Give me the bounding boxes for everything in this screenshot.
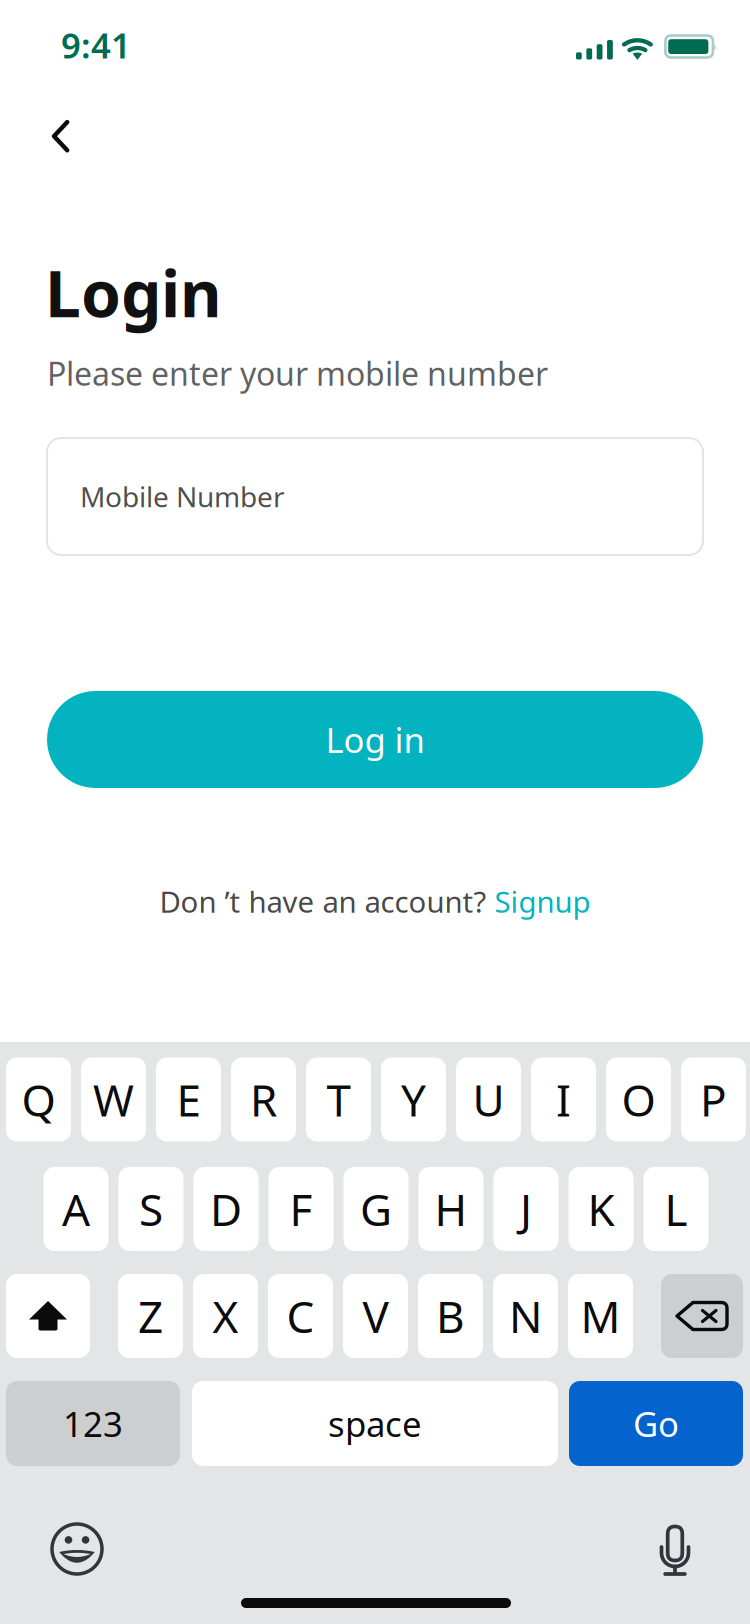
staticText: N (509, 1287, 542, 1345)
staticText: space (328, 1400, 422, 1446)
button[interactable]: W (81, 1057, 146, 1141)
staticText: D (210, 1180, 242, 1238)
staticText: B (436, 1287, 465, 1345)
staticText: C (286, 1287, 314, 1345)
button[interactable]: J (493, 1167, 558, 1251)
staticText: 123 (63, 1400, 123, 1446)
staticText: Don ’t have an account? (159, 882, 494, 921)
staticText: S (139, 1180, 163, 1238)
staticText: R (250, 1070, 277, 1129)
staticText: W (93, 1070, 134, 1129)
button[interactable]: Z (118, 1274, 183, 1358)
button[interactable]: P (681, 1057, 746, 1141)
staticText: U (472, 1070, 504, 1129)
staticText: Login (45, 250, 222, 335)
staticText: M (580, 1287, 620, 1345)
button[interactable]: 123 (6, 1381, 180, 1466)
staticText: I (556, 1070, 571, 1129)
staticText: O (621, 1070, 655, 1129)
staticText: F (289, 1180, 312, 1238)
staticText: Mobile Number (80, 478, 285, 515)
button[interactable]: I (531, 1057, 596, 1141)
button[interactable]: D (193, 1167, 258, 1251)
staticText: T (326, 1070, 350, 1129)
button[interactable]: G (343, 1167, 408, 1251)
button[interactable]: T (306, 1057, 371, 1141)
staticText: E (176, 1070, 200, 1129)
button[interactable]: F (268, 1167, 333, 1251)
button[interactable]: space (192, 1381, 558, 1466)
button[interactable]: Dictation (632, 1506, 718, 1592)
button[interactable]: B (418, 1274, 483, 1358)
button[interactable]: K (568, 1167, 633, 1251)
button[interactable]: Emoji keyboard (34, 1506, 120, 1592)
staticText: Y (401, 1070, 426, 1129)
button[interactable]: O (606, 1057, 671, 1141)
button[interactable]: L (643, 1167, 708, 1251)
button[interactable]: Signup (494, 882, 590, 921)
button[interactable]: U (456, 1057, 521, 1141)
staticText: H (434, 1180, 467, 1238)
button[interactable]: S (118, 1167, 183, 1251)
button[interactable]: Go (569, 1381, 743, 1466)
staticText: L (664, 1180, 687, 1238)
button[interactable]: Delete (661, 1274, 743, 1358)
button[interactable]: Mobile Number (47, 438, 703, 555)
button[interactable]: A (43, 1167, 108, 1251)
button[interactable]: Q (6, 1057, 71, 1141)
staticText: Z (138, 1287, 163, 1345)
staticText: Signup (494, 882, 590, 921)
button[interactable]: E (156, 1057, 221, 1141)
staticText: X (212, 1287, 238, 1345)
staticText: 9:41 (61, 22, 131, 68)
staticText: K (587, 1180, 614, 1238)
staticText: Please enter your mobile number (47, 352, 548, 394)
button[interactable]: M (568, 1274, 633, 1358)
staticText: J (520, 1180, 532, 1238)
button[interactable]: Shift (6, 1274, 90, 1358)
button[interactable]: H (418, 1167, 483, 1251)
staticText: V (362, 1287, 388, 1345)
staticText: Go (633, 1400, 679, 1446)
button[interactable]: C (268, 1274, 333, 1358)
staticText: P (700, 1070, 727, 1129)
staticText: Log in (325, 716, 424, 762)
staticText: A (62, 1180, 90, 1238)
button[interactable]: V (343, 1274, 408, 1358)
staticText: Q (21, 1070, 55, 1129)
button[interactable]: X (193, 1274, 258, 1358)
button[interactable]: N (493, 1274, 558, 1358)
button[interactable]: R (231, 1057, 296, 1141)
button[interactable]: Back (31, 107, 89, 165)
button[interactable]: Y (381, 1057, 446, 1141)
staticText: G (360, 1180, 392, 1238)
button[interactable]: Log in (47, 691, 703, 788)
